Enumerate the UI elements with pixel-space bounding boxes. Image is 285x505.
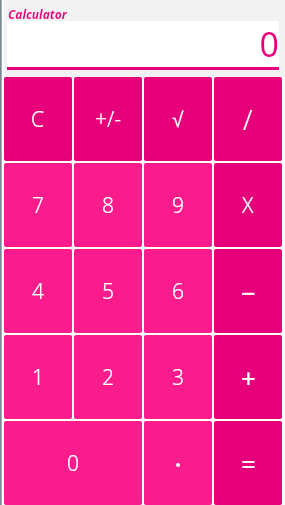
staticText: 6	[172, 277, 184, 306]
button[interactable]: 3	[144, 335, 212, 419]
button[interactable]: +	[214, 335, 282, 419]
staticText: /	[243, 101, 253, 138]
button[interactable]: /	[214, 77, 282, 161]
button[interactable]: −	[214, 249, 282, 333]
button[interactable]: X	[214, 163, 282, 247]
staticText: √	[172, 108, 184, 131]
staticText: 5	[102, 277, 114, 306]
staticText: X	[242, 191, 254, 220]
button[interactable]: Decimal point	[144, 421, 212, 505]
staticText: 8	[102, 191, 114, 220]
button[interactable]: =	[214, 421, 282, 505]
staticText: 0	[7, 21, 279, 67]
staticText: C	[31, 105, 45, 134]
button[interactable]: 5	[74, 249, 142, 333]
staticText: +/-	[95, 105, 122, 134]
button[interactable]: +/-	[74, 77, 142, 161]
staticText: Calculator	[8, 6, 67, 21]
staticText: −	[241, 275, 256, 310]
staticText: 4	[32, 277, 44, 306]
staticText: 3	[172, 363, 184, 392]
staticText: +	[241, 360, 256, 395]
button[interactable]: 1	[4, 335, 72, 419]
button[interactable]: √	[144, 77, 212, 161]
staticText: 7	[32, 191, 44, 220]
staticText: =	[241, 446, 256, 481]
button[interactable]: 4	[4, 249, 72, 333]
button[interactable]: 2	[74, 335, 142, 419]
staticText: 1	[32, 363, 44, 392]
button[interactable]: 6	[144, 249, 212, 333]
button[interactable]: 8	[74, 163, 142, 247]
button[interactable]: 7	[4, 163, 72, 247]
staticText: 2	[102, 363, 114, 392]
staticText: 0	[67, 449, 79, 478]
staticText: 9	[172, 191, 184, 220]
button[interactable]: 9	[144, 163, 212, 247]
button[interactable]: 0	[4, 421, 142, 505]
button[interactable]: C	[4, 77, 72, 161]
